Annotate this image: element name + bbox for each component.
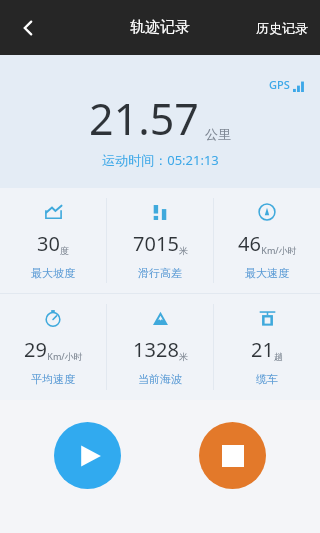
staticText: 历史记录	[256, 20, 308, 36]
staticText: 轨迹记录	[130, 18, 190, 37]
staticText: 29	[24, 336, 47, 363]
staticText: 运动时间：05:21:13	[102, 151, 219, 169]
staticText: 度	[60, 245, 69, 256]
staticText: 7015	[133, 230, 179, 257]
staticText: 30	[37, 230, 60, 257]
staticText: 最大坡度	[31, 266, 75, 280]
staticText: 21	[251, 336, 274, 363]
button[interactable]: Back	[6, 6, 50, 50]
button[interactable]: Stop	[199, 422, 266, 489]
staticText: 缆车	[256, 372, 278, 386]
button[interactable]: 21	[214, 294, 320, 400]
button[interactable]: GPS signal	[269, 77, 306, 92]
button[interactable]: 7015	[107, 188, 213, 293]
staticText: 趟	[274, 351, 283, 362]
staticText: 公里	[205, 126, 231, 142]
staticText: GPS	[269, 77, 290, 92]
staticText: Km/小时	[47, 350, 83, 362]
button[interactable]: 30	[0, 188, 106, 293]
button[interactable]: Start	[54, 422, 121, 489]
button[interactable]: 历史记录	[244, 10, 320, 46]
staticText: 平均速度	[31, 372, 75, 386]
button[interactable]: 29	[0, 294, 106, 400]
staticText: 1328	[133, 336, 179, 363]
staticText: 当前海波	[138, 372, 182, 386]
staticText: 最大速度	[245, 266, 289, 280]
staticText: 46	[238, 230, 261, 257]
staticText: 滑行高差	[138, 266, 182, 280]
staticText: Km/小时	[261, 244, 297, 256]
button[interactable]: 1328	[107, 294, 213, 400]
staticText: 21.57	[89, 89, 199, 148]
button[interactable]: 46	[214, 188, 320, 293]
staticText: 米	[179, 245, 188, 256]
staticText: 米	[179, 351, 188, 362]
